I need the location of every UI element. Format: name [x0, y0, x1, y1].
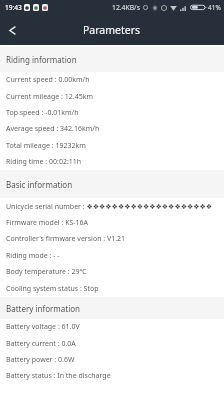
button[interactable]: Back [3, 21, 21, 39]
staticText: Total mileage : 19232km [6, 141, 86, 151]
staticText: Basic information [6, 179, 73, 190]
staticText: Battery information [6, 303, 81, 314]
button[interactable]: Top speed : -0.01km/h [0, 105, 224, 121]
button[interactable]: Battery voltage : 61.0V [0, 319, 224, 335]
staticText: Riding time : 00:02:11h [6, 157, 82, 167]
button[interactable]: Battery power : 0.6W [0, 352, 224, 368]
button[interactable]: Cooling system status : Stop [0, 280, 224, 297]
staticText: Battery voltage : 61.0V [6, 322, 80, 332]
staticText: Average speed : 342.16km/h [6, 124, 100, 134]
button[interactable]: Battery current : 0.0A [0, 335, 224, 352]
staticText: Current mileage : 12.45km [6, 92, 93, 102]
button[interactable]: Battery status : In the discharge [0, 368, 224, 384]
staticText: Battery status : In the discharge [6, 371, 111, 381]
button[interactable]: Riding time : 00:02:11h [0, 154, 224, 170]
button[interactable]: Controller's firmware version : V1.21 [0, 231, 224, 247]
staticText: 41% [208, 3, 221, 12]
staticText: Top speed : -0.01km/h [6, 108, 79, 118]
button[interactable]: Current mileage : 12.45km [0, 88, 224, 105]
staticText: Battery power : 0.6W [6, 355, 75, 365]
button[interactable]: Riding mode : - - [0, 247, 224, 264]
button[interactable]: Body temperature : 29℃ [0, 264, 224, 280]
button[interactable]: Unicycle serial number : ❖❖❖❖❖❖❖❖❖❖❖❖❖❖❖… [0, 198, 224, 215]
staticText: Unicycle serial number : ❖❖❖❖❖❖❖❖❖❖❖❖❖❖❖… [6, 202, 213, 212]
staticText: Riding mode : - - [6, 251, 60, 261]
staticText: Body temperature : 29℃ [6, 267, 87, 277]
staticText: Controller's firmware version : V1.21 [6, 234, 126, 244]
staticText: Firmware model : KS-16A [6, 218, 89, 228]
button[interactable]: Current speed : 0.00km/h [0, 72, 224, 88]
staticText: 19:43 [5, 3, 22, 12]
button[interactable]: Total mileage : 19232km [0, 137, 224, 154]
button[interactable]: Average speed : 342.16km/h [0, 121, 224, 137]
staticText: Riding information [6, 54, 77, 65]
staticText: Parameters [83, 23, 141, 37]
button[interactable]: Firmware model : KS-16A [0, 215, 224, 231]
staticText: Battery current : 0.0A [6, 339, 76, 349]
staticText: Cooling system status : Stop [6, 284, 99, 294]
staticText: Current speed : 0.00km/h [6, 75, 90, 85]
staticText: 12.4KB/s [112, 3, 140, 12]
